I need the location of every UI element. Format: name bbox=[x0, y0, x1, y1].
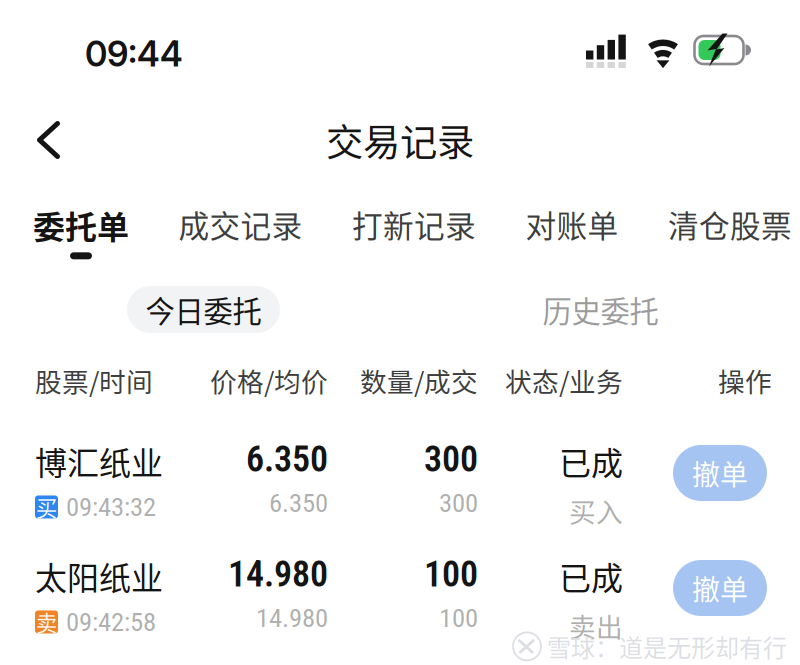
staticText: 价格/均价 bbox=[210, 361, 328, 400]
staticText: 太阳纸业 bbox=[35, 553, 163, 599]
staticText: 历史委托 bbox=[542, 288, 658, 331]
staticText: 300 bbox=[439, 487, 478, 518]
staticText: 股票/时间 bbox=[35, 361, 153, 400]
staticText: 已成 bbox=[559, 438, 623, 484]
staticText: 数量/成交 bbox=[360, 361, 478, 400]
staticText: 100 bbox=[424, 553, 478, 595]
staticText: 雪球：道是无形却有行 bbox=[547, 629, 787, 664]
staticText: 成交记录 bbox=[178, 202, 302, 246]
staticText: 博汇纸业 bbox=[35, 438, 163, 484]
staticText: 已成 bbox=[559, 553, 623, 599]
button[interactable]: 对账单 bbox=[525, 202, 618, 257]
staticText: 清仓股票 bbox=[668, 202, 792, 246]
staticText: 6.350 bbox=[246, 438, 328, 480]
staticText: 09:44 bbox=[85, 33, 183, 75]
staticText: 交易记录 bbox=[326, 113, 474, 167]
staticText: 300 bbox=[424, 438, 478, 480]
button[interactable]: 今日委托 bbox=[127, 286, 280, 333]
staticText: 撤单 bbox=[692, 568, 748, 608]
staticText: 14.980 bbox=[256, 602, 328, 633]
staticText: 对账单 bbox=[525, 202, 618, 246]
button[interactable]: 打新记录 bbox=[352, 202, 476, 257]
staticText: 100 bbox=[439, 602, 478, 633]
staticText: 6.350 bbox=[269, 487, 328, 518]
button[interactable]: 返回 bbox=[17, 104, 76, 176]
button[interactable]: 清仓股票 bbox=[668, 202, 792, 257]
staticText: 委托单 bbox=[33, 202, 129, 248]
staticText: 14.980 bbox=[228, 553, 328, 595]
button[interactable]: 撤单 bbox=[673, 560, 767, 616]
staticText: 打新记录 bbox=[352, 202, 476, 246]
staticText: 09:42:58 bbox=[66, 606, 156, 638]
button[interactable]: 撤单 bbox=[673, 445, 767, 501]
staticText: 卖出 bbox=[569, 606, 623, 645]
staticText: 今日委托 bbox=[145, 288, 261, 331]
staticText: 买 bbox=[36, 491, 57, 522]
staticText: 操作 bbox=[718, 361, 772, 400]
button[interactable]: 历史委托 bbox=[524, 286, 677, 333]
staticText: 状态/业务 bbox=[505, 361, 623, 400]
staticText: 09:43:32 bbox=[66, 491, 156, 523]
staticText: 撤单 bbox=[692, 453, 748, 493]
button[interactable]: 成交记录 bbox=[178, 202, 302, 257]
staticText: 卖 bbox=[36, 606, 57, 637]
button[interactable]: 委托单 bbox=[33, 202, 129, 259]
staticText: 买入 bbox=[569, 491, 623, 530]
